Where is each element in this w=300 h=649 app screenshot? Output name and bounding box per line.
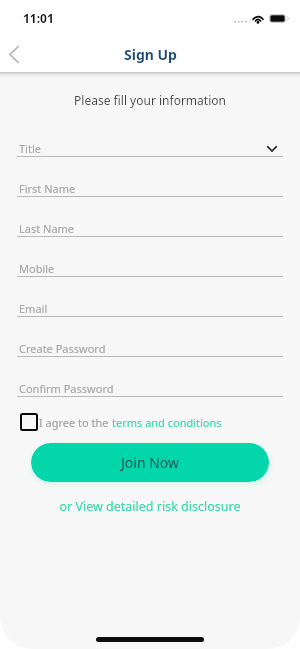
staticText: Join Now: [121, 453, 180, 472]
button[interactable]: Join Now: [31, 443, 269, 482]
staticText: First Name: [19, 181, 76, 196]
staticText: 11:01: [23, 10, 54, 26]
staticText: Please fill your information: [0, 92, 300, 108]
staticText: Email: [19, 301, 48, 316]
button[interactable]: I agree checkbox: [20, 413, 38, 431]
staticText: Confirm Password: [19, 381, 114, 396]
button[interactable]: or View detailed risk disclosure: [0, 498, 300, 515]
staticText: Last Name: [19, 221, 75, 236]
button[interactable]: terms and conditions: [112, 415, 222, 430]
staticText: I agree to the: [39, 415, 112, 430]
staticText: Title: [19, 141, 41, 156]
staticText: Mobile: [19, 261, 55, 276]
button[interactable]: Back: [0, 40, 28, 68]
staticText: Create Password: [19, 341, 106, 356]
staticText: Sign Up: [124, 45, 177, 64]
